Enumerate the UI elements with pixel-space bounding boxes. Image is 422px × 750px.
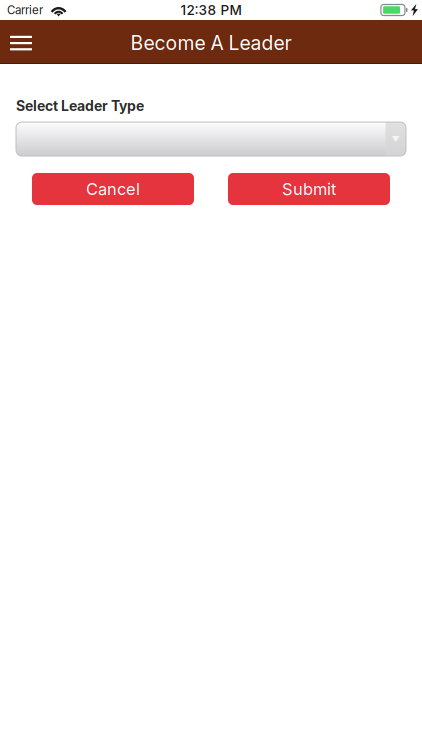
staticText: Submit <box>282 179 336 199</box>
button[interactable]: Submit <box>228 173 390 205</box>
button[interactable]: Menu <box>0 20 54 64</box>
button[interactable]: Cancel <box>32 173 194 205</box>
staticText: Select Leader Type <box>16 97 144 114</box>
staticText: 12:38 PM <box>180 2 241 18</box>
staticText: Carrier <box>7 3 43 17</box>
staticText: Cancel <box>86 179 140 199</box>
staticText: Become A Leader <box>130 31 291 55</box>
button[interactable]: Select Leader Type <box>16 122 406 156</box>
